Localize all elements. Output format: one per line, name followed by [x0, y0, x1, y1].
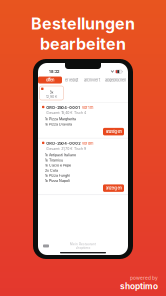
staticText: Mein Restaurant: [70, 242, 96, 246]
staticText: Tisch 4: [74, 111, 86, 115]
button[interactable]: ORD-2504-0002: [38, 139, 128, 194]
staticText: 1x Tiramisu: [45, 158, 63, 162]
staticText: Gesamt: 31,70 €: [46, 147, 72, 151]
staticText: ORD-2504-0002: [46, 141, 80, 146]
staticText: 3x: [49, 90, 53, 94]
staticText: archiviert: [84, 78, 100, 82]
staticText: shoptimo: [75, 246, 90, 250]
staticText: 1x Pizza Napoli: [45, 178, 70, 183]
staticText: 18:22: [49, 69, 59, 74]
staticText: Bestellungen: [31, 14, 135, 33]
staticText: anzeigen: [105, 129, 121, 134]
staticText: vor 1m: [82, 105, 93, 110]
staticText: 1x Antipasti Italiano: [45, 153, 76, 157]
staticText: offen: [46, 78, 54, 82]
button[interactable]: ORD-2504-0001: [38, 103, 128, 138]
button[interactable]: archiviert: [81, 76, 103, 83]
staticText: erledigt: [65, 78, 78, 82]
staticText: 1x Pizza Margherita: [45, 117, 76, 121]
staticText: abgebrochen: [105, 78, 126, 82]
button[interactable]: offen: [38, 76, 62, 83]
button[interactable]: erledigt: [62, 76, 81, 83]
staticText: 2x Cola: [45, 168, 58, 173]
staticText: powered by: [130, 275, 158, 281]
staticText: vor 8m: [82, 141, 93, 146]
staticText: Tisch 9: [74, 147, 86, 151]
staticText: shoptimo: [120, 281, 158, 291]
staticText: 1x Cacio e Pepe: [45, 163, 71, 167]
staticText: anzeigen: [105, 186, 121, 190]
staticText: ORD-2504-0001: [46, 105, 80, 110]
button[interactable]: abgebrochen: [103, 76, 128, 83]
staticText: 1x Pizza Funghi: [45, 173, 70, 178]
staticText: Gesamt: 15,40 €: [46, 111, 72, 115]
staticText: bearbeiten: [40, 34, 126, 54]
staticText: 12,90 €: [46, 95, 57, 99]
staticText: 1x Pizza Diavola: [45, 122, 72, 126]
